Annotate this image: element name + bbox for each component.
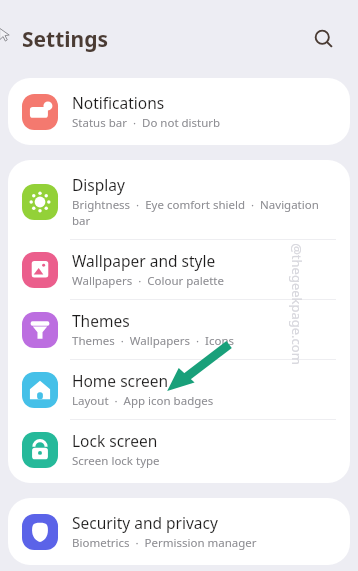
button[interactable]: Wallpaper and style <box>8 240 350 299</box>
button[interactable]: Display <box>8 164 350 239</box>
button[interactable]: Notifications <box>8 82 350 141</box>
staticText: Biometrics · Permission manager <box>72 535 257 551</box>
staticText: Wallpapers · Colour palette <box>72 273 224 289</box>
staticText: Brightness · Eye comfort shield · Naviga… <box>72 197 336 229</box>
staticText: Layout · App icon badges <box>72 393 214 409</box>
staticText: Notifications <box>72 92 165 113</box>
staticText: Security and privacy <box>72 512 218 533</box>
staticText: Display <box>72 174 125 195</box>
staticText: Settings <box>22 25 109 54</box>
staticText: @thegeekpage.com <box>288 243 306 365</box>
staticText: Status bar · Do not disturb <box>72 115 221 131</box>
button[interactable]: Home screen <box>8 360 350 419</box>
staticText: Lock screen <box>72 430 158 451</box>
button[interactable]: Themes <box>8 300 350 359</box>
button[interactable]: Security and privacy <box>8 502 350 561</box>
staticText: Themes · Wallpapers · Icons <box>72 333 234 349</box>
staticText: Wallpaper and style <box>72 250 216 271</box>
button[interactable]: Lock screen <box>8 420 350 479</box>
staticText: Screen lock type <box>72 453 160 469</box>
staticText: Themes <box>72 310 130 331</box>
button[interactable]: Search <box>304 19 344 59</box>
staticText: Home screen <box>72 370 169 391</box>
